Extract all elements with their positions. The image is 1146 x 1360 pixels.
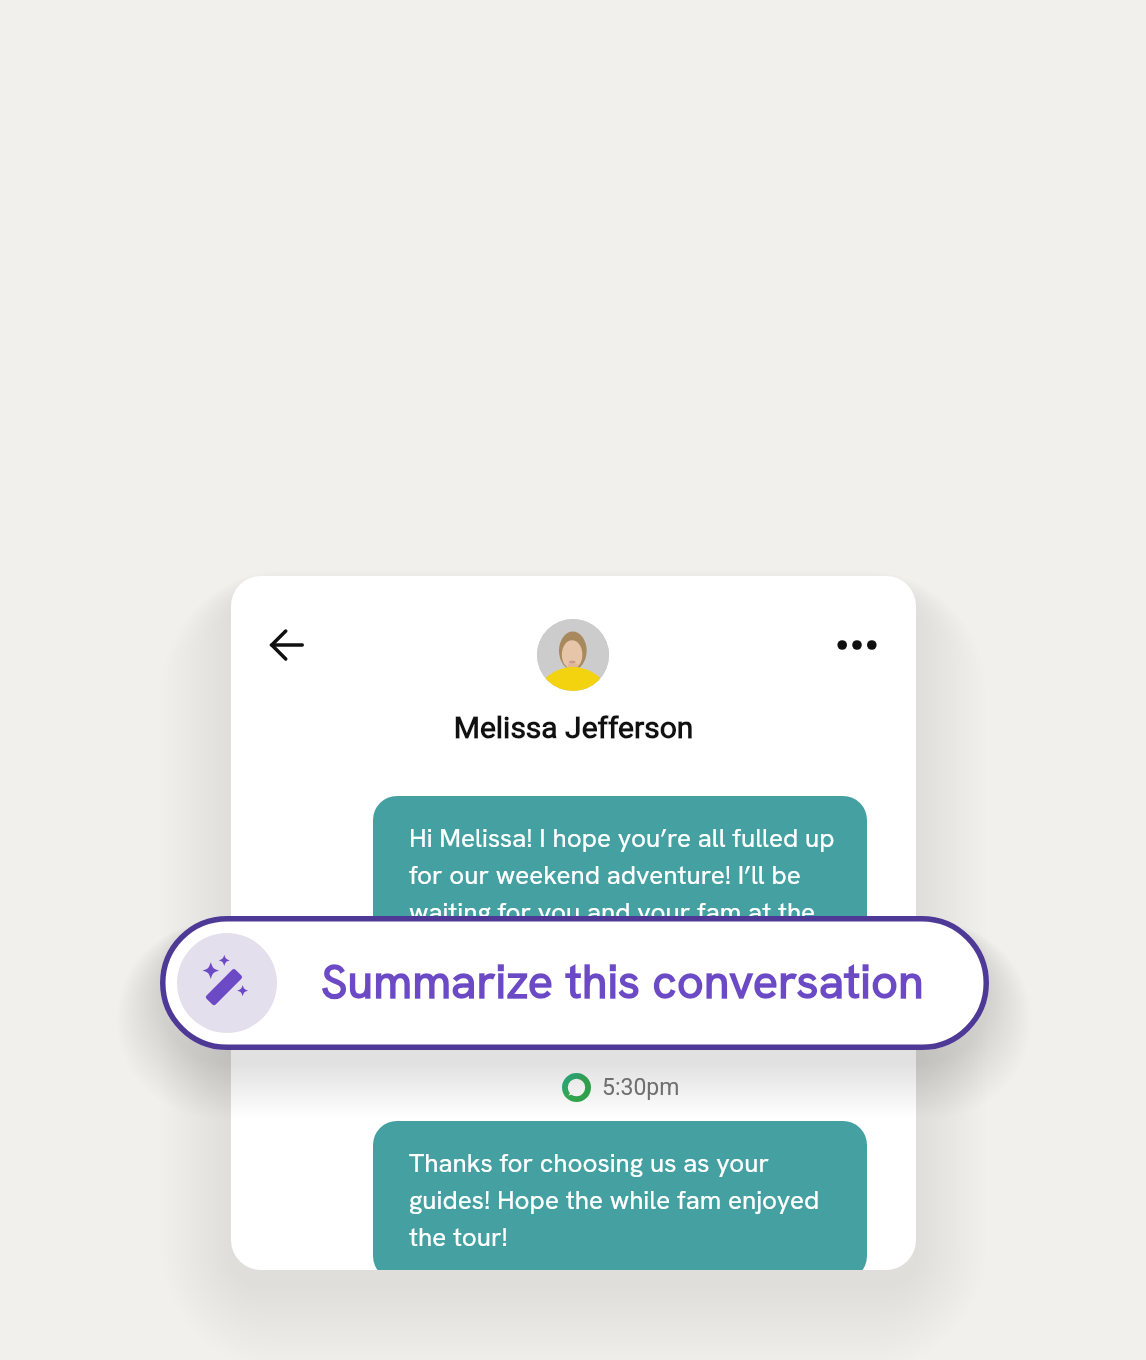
button[interactable]: Summarize this conversation xyxy=(160,916,989,1050)
button[interactable]: More options xyxy=(827,615,887,675)
staticText: Hi Melissa! I hope you’re all fulled up … xyxy=(409,821,849,929)
staticText: Melissa Jefferson xyxy=(231,710,916,745)
staticText: Summarize this conversation xyxy=(321,951,924,1012)
staticText: Thanks for choosing us as your guides! H… xyxy=(409,1146,849,1254)
staticText: 5:30pm xyxy=(602,1074,680,1101)
button[interactable]: Back xyxy=(253,611,321,679)
